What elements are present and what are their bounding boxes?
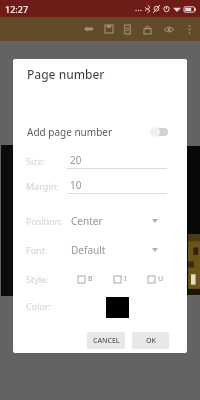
button[interactable]: Toolbar action bbox=[159, 17, 178, 41]
staticText: Size: bbox=[26, 155, 45, 167]
button[interactable]: U bbox=[148, 270, 164, 288]
staticText: CANCEL bbox=[93, 336, 120, 346]
staticText: OK bbox=[146, 336, 156, 346]
staticText: Margin: bbox=[26, 180, 59, 192]
button[interactable]: Toolbar action bbox=[138, 17, 157, 41]
staticText: 12:27 bbox=[5, 3, 29, 15]
staticText: Color: bbox=[26, 300, 52, 312]
staticText: Page number bbox=[27, 66, 105, 82]
staticText: I bbox=[124, 274, 127, 284]
button[interactable]: Position: bbox=[13, 211, 187, 231]
staticText: Default bbox=[71, 243, 106, 257]
button[interactable]: Toolbar action bbox=[99, 17, 118, 41]
button[interactable]: Font: bbox=[13, 240, 187, 260]
staticText: Position: bbox=[26, 215, 63, 227]
staticText: Add page number bbox=[27, 125, 113, 139]
button[interactable]: I bbox=[114, 270, 127, 288]
button[interactable]: More options bbox=[183, 17, 195, 41]
staticText: Style: bbox=[26, 273, 49, 285]
button[interactable]: Add page number bbox=[150, 125, 168, 139]
staticText: U bbox=[158, 274, 164, 284]
button[interactable]: OK bbox=[132, 332, 169, 349]
staticText: Center bbox=[71, 214, 103, 228]
staticText: B bbox=[88, 274, 93, 284]
button[interactable]: Toolbar action bbox=[118, 17, 137, 41]
staticText: 20 bbox=[70, 153, 82, 167]
button[interactable]: Add page number bbox=[13, 120, 187, 144]
staticText: Font: bbox=[26, 244, 48, 256]
button[interactable]: Toolbar action bbox=[79, 17, 98, 41]
staticText: 10 bbox=[70, 178, 82, 192]
button[interactable]: CANCEL bbox=[87, 332, 125, 349]
button[interactable]: B bbox=[78, 270, 93, 288]
